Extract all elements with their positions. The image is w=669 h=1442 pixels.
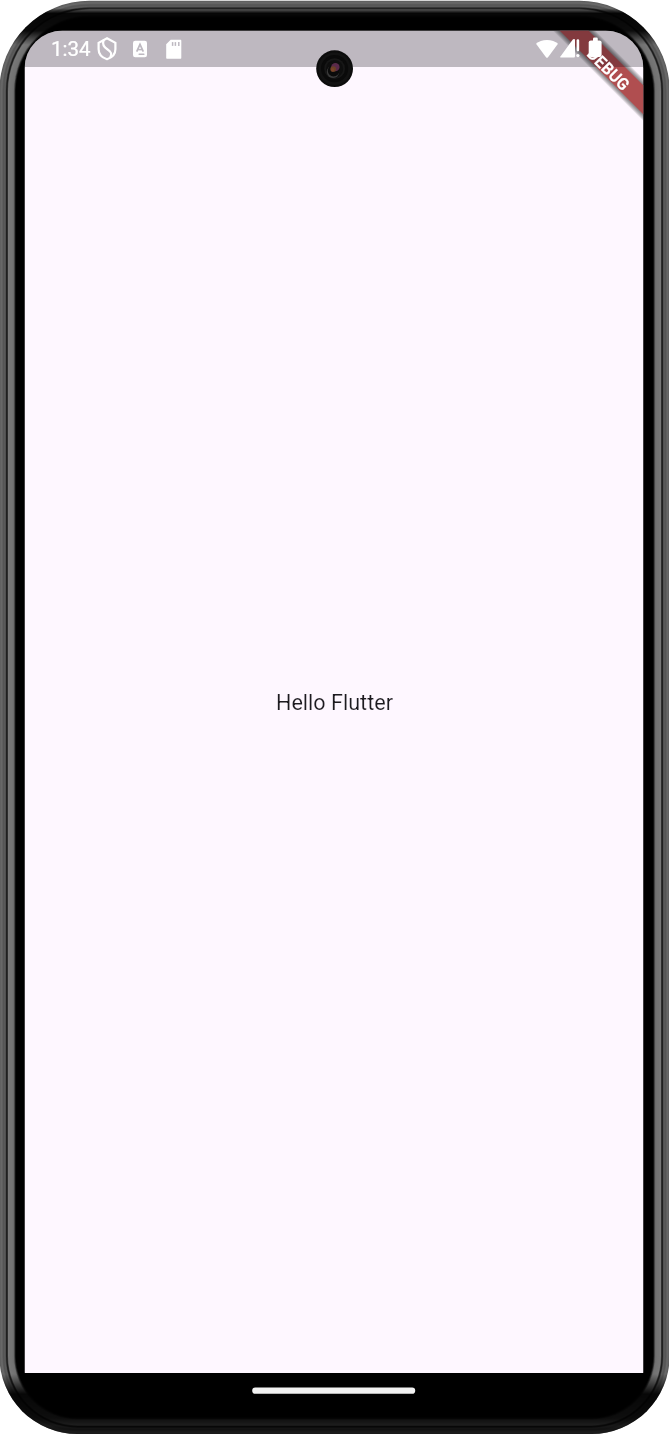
staticText: Hello Flutter <box>276 690 394 715</box>
other: Mobile signal: no internet <box>557 36 583 62</box>
other: Battery <box>586 34 605 62</box>
other: Wi-Fi signal <box>534 36 561 62</box>
other: Screenshot saved <box>131 36 149 62</box>
staticText: 1:34 <box>51 37 91 61</box>
other: VPN active <box>96 36 118 62</box>
staticText: DEBUG <box>583 45 634 95</box>
other: SD card <box>165 36 183 62</box>
